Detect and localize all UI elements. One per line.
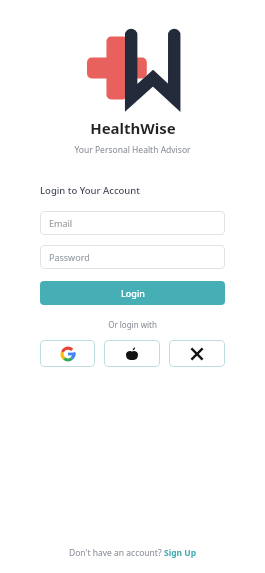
- staticText: Don't have an account?: [69, 547, 164, 559]
- button[interactable]: Login: [40, 281, 225, 305]
- button[interactable]: Sign in with Apple: [104, 340, 160, 367]
- button[interactable]: Sign in with Google: [40, 340, 95, 367]
- button[interactable]: Email: [40, 211, 225, 235]
- staticText: Password: [49, 251, 90, 263]
- staticText: Email: [49, 217, 73, 229]
- staticText: Sign Up: [164, 547, 197, 559]
- button[interactable]: Sign in with X: [169, 340, 225, 367]
- staticText: Login to Your Account: [40, 184, 140, 197]
- button[interactable]: Sign Up: [164, 547, 197, 559]
- staticText: Your Personal Health Advisor: [74, 144, 191, 156]
- staticText: Login: [121, 287, 145, 299]
- button[interactable]: Password: [40, 245, 225, 269]
- staticText: HealthWise: [90, 118, 176, 138]
- staticText: Or login with: [40, 319, 225, 330]
